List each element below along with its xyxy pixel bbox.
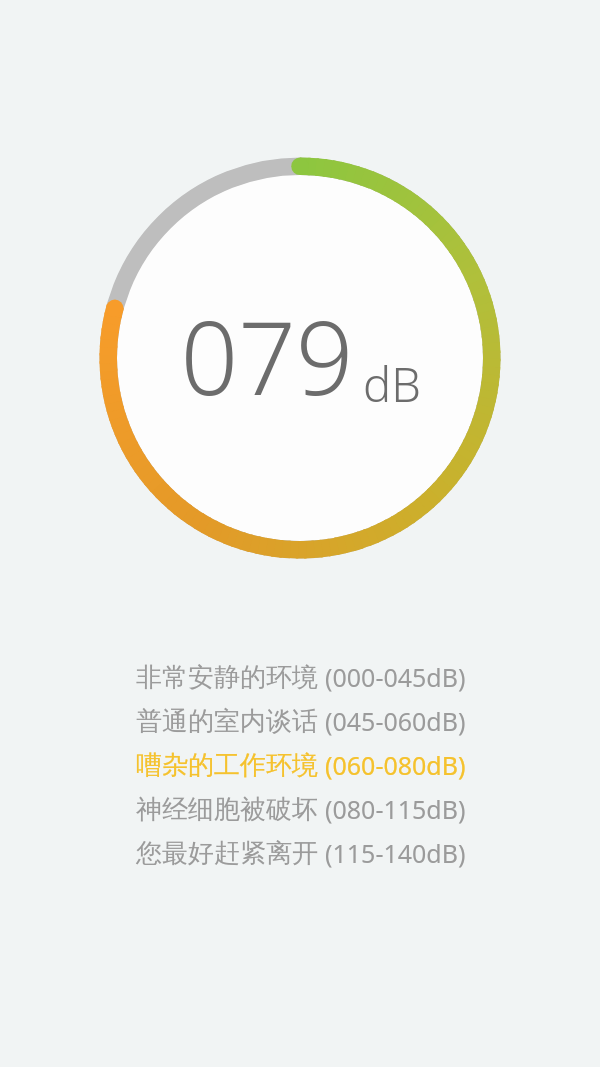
staticText: dB bbox=[363, 352, 421, 416]
button[interactable]: 普通的室内谈话 bbox=[136, 699, 476, 743]
button[interactable]: 非常安静的环境 bbox=[136, 655, 476, 699]
button[interactable]: 您最好赶紧离开 bbox=[136, 831, 476, 875]
staticText: 您最好赶紧离开 bbox=[136, 837, 318, 870]
staticText: 普通的室内谈话 bbox=[136, 705, 318, 738]
staticText: (000-045dB) bbox=[325, 660, 466, 694]
button[interactable]: Noise level gauge 079 dB bbox=[96, 154, 504, 562]
staticText: (080-115dB) bbox=[325, 792, 466, 826]
staticText: 079 bbox=[180, 287, 354, 425]
button[interactable]: 神经细胞被破坏 bbox=[136, 787, 476, 831]
staticText: 神经细胞被破坏 bbox=[136, 793, 318, 826]
staticText: (060-080dB) bbox=[325, 748, 466, 782]
staticText: (045-060dB) bbox=[325, 704, 466, 738]
staticText: (115-140dB) bbox=[325, 836, 466, 870]
staticText: 嘈杂的工作环境 bbox=[136, 749, 318, 782]
staticText: 非常安静的环境 bbox=[136, 661, 318, 694]
button[interactable]: 嘈杂的工作环境 bbox=[136, 743, 476, 787]
